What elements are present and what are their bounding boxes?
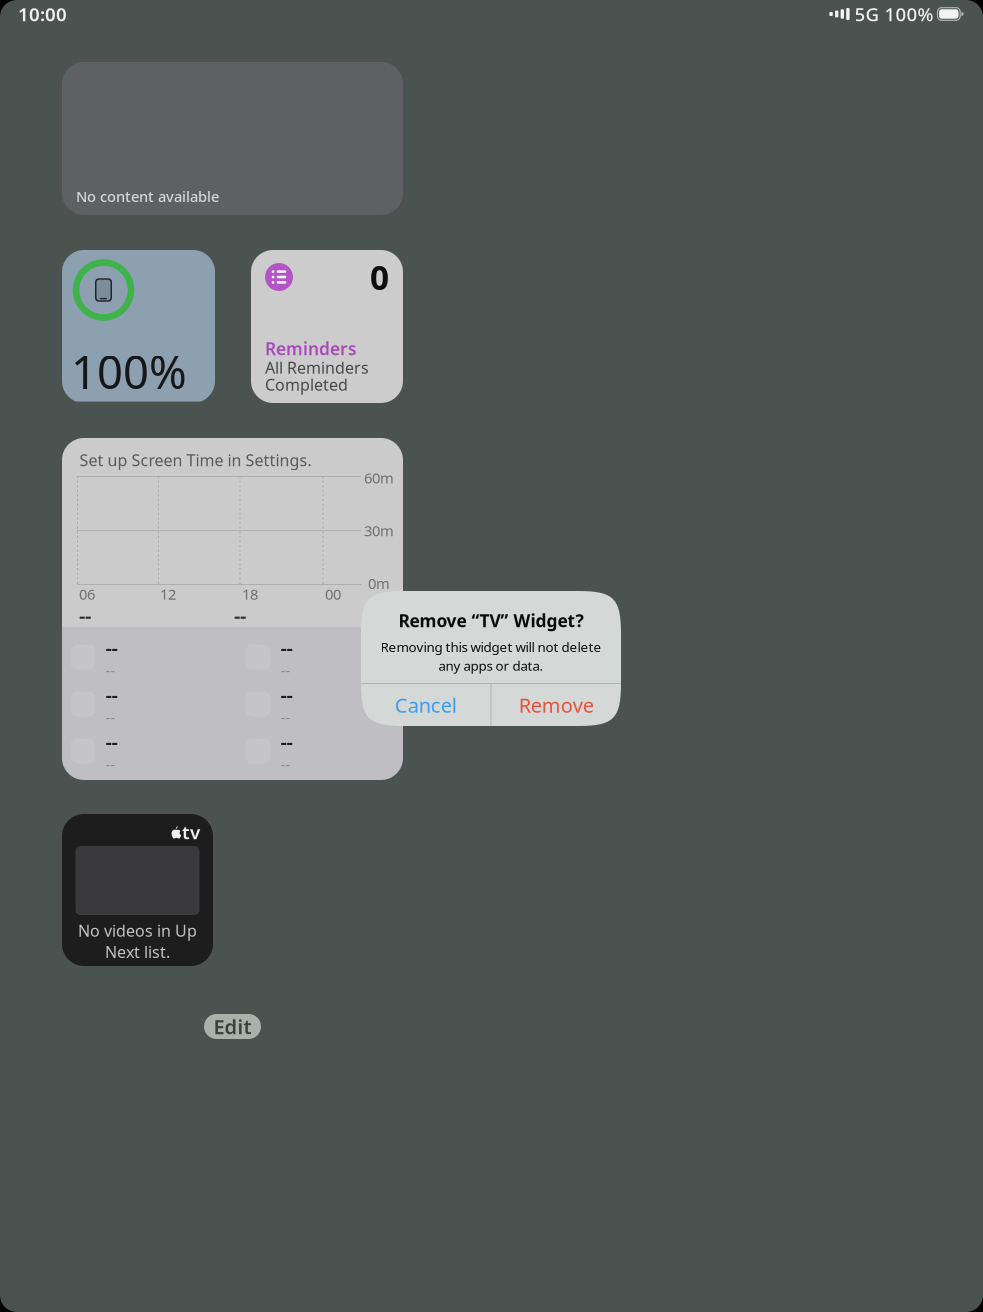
staticText: -- bbox=[105, 707, 115, 727]
staticText: any apps or data. bbox=[438, 657, 543, 674]
staticText: -- bbox=[280, 754, 290, 774]
staticText: Remove “TV” Widget? bbox=[398, 609, 583, 632]
staticText: 12 bbox=[160, 584, 176, 604]
staticText: -- bbox=[105, 754, 115, 774]
staticText: Set up Screen Time in Settings. bbox=[79, 449, 311, 471]
staticText: 60m bbox=[364, 468, 394, 487]
button[interactable]: Edit bbox=[204, 1014, 261, 1039]
staticText: All Reminders bbox=[265, 357, 369, 378]
staticText: -- bbox=[105, 660, 115, 680]
staticText: Cancel bbox=[395, 692, 457, 718]
staticText: 06 bbox=[79, 584, 95, 604]
staticText: -- bbox=[105, 634, 117, 661]
staticText: -- bbox=[105, 681, 117, 708]
staticText: -- bbox=[234, 602, 246, 628]
staticText: -- bbox=[79, 602, 91, 628]
button[interactable]: Cancel bbox=[361, 684, 490, 726]
button[interactable]: Batteries widget, iPhone 100 percent bbox=[62, 250, 215, 403]
staticText: 100% bbox=[71, 341, 187, 401]
button[interactable]: Screen Time widget, set up Screen Time i… bbox=[62, 438, 403, 780]
staticText: 0 bbox=[370, 255, 389, 299]
staticText: tv bbox=[182, 820, 200, 844]
button[interactable]: Widget, no content available bbox=[62, 62, 403, 215]
staticText: 100% bbox=[884, 2, 933, 26]
staticText: -- bbox=[280, 707, 290, 727]
staticText: Removing this widget will not delete bbox=[380, 638, 601, 656]
staticText: 0m bbox=[368, 573, 390, 593]
staticText: -- bbox=[280, 634, 292, 661]
button[interactable]: Reminders widget, All Reminders Complete… bbox=[251, 250, 403, 403]
staticText: No content available bbox=[76, 186, 219, 206]
staticText: 18 bbox=[242, 584, 258, 604]
staticText: Completed bbox=[265, 374, 348, 395]
staticText: 00 bbox=[325, 584, 341, 604]
staticText: Edit bbox=[213, 1013, 251, 1040]
staticText: -- bbox=[280, 728, 292, 755]
button[interactable]: Apple TV widget, no videos in Up Next li… bbox=[62, 814, 213, 966]
staticText: -- bbox=[280, 681, 292, 708]
button[interactable]: Remove bbox=[491, 684, 621, 726]
staticText: 10:00 bbox=[18, 2, 67, 26]
staticText: No videos in Up bbox=[78, 920, 197, 941]
staticText: -- bbox=[280, 660, 290, 680]
staticText: Remove bbox=[519, 692, 594, 718]
staticText: Next list. bbox=[105, 941, 170, 962]
staticText: Reminders bbox=[265, 337, 357, 360]
staticText: 30m bbox=[364, 521, 394, 540]
staticText: -- bbox=[105, 728, 117, 755]
staticText: 5G bbox=[854, 2, 879, 26]
